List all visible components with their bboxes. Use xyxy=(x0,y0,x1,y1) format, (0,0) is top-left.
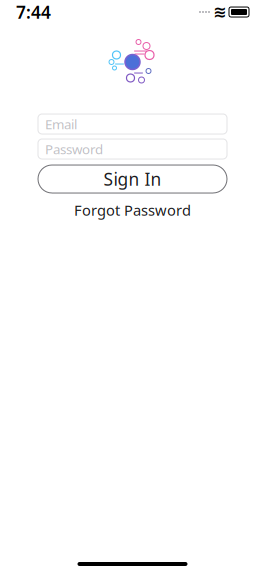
button[interactable]: Email xyxy=(38,114,227,134)
staticText: ≋ xyxy=(213,3,226,21)
staticText: Email xyxy=(45,115,77,133)
button[interactable]: Sign In xyxy=(38,165,227,193)
staticText: 7:44 xyxy=(16,0,51,23)
button[interactable]: Forgot Password xyxy=(74,202,191,218)
staticText: Sign In xyxy=(103,167,161,190)
staticText: Password xyxy=(45,140,103,158)
staticText: Forgot Password xyxy=(74,200,191,220)
button[interactable]: Password xyxy=(38,139,227,159)
